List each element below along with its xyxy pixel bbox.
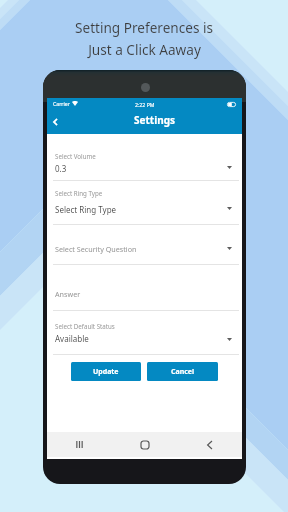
button[interactable]: Recent apps: [47, 432, 112, 457]
button[interactable]: Home: [112, 432, 177, 457]
staticText: Select Default Status: [55, 322, 115, 330]
staticText: Settings: [134, 113, 175, 127]
button[interactable]: Cancel: [147, 362, 218, 381]
button[interactable]: [47, 264, 242, 310]
staticText: Select Security Question: [55, 244, 137, 254]
button[interactable]: [47, 134, 242, 180]
staticText: Setting Preferences is: [75, 18, 213, 37]
staticText: Available: [55, 333, 89, 344]
button[interactable]: Back: [177, 432, 242, 457]
staticText: Cancel: [171, 367, 195, 377]
staticText: Just a Click Aaway: [88, 40, 201, 59]
staticText: Carrier: [53, 100, 70, 107]
button[interactable]: Update: [71, 362, 141, 381]
button[interactable]: Back: [45, 109, 66, 134]
button[interactable]: [47, 180, 242, 224]
staticText: 0.3: [55, 163, 67, 174]
button[interactable]: [47, 224, 242, 264]
staticText: Select Ring Type: [55, 189, 103, 197]
staticText: Select Volume: [55, 152, 96, 160]
staticText: Select Ring Type: [55, 204, 117, 215]
button[interactable]: [47, 310, 242, 355]
staticText: Update: [93, 367, 119, 377]
staticText: Answer: [55, 289, 81, 299]
staticText: 2:22 PM: [135, 101, 155, 108]
